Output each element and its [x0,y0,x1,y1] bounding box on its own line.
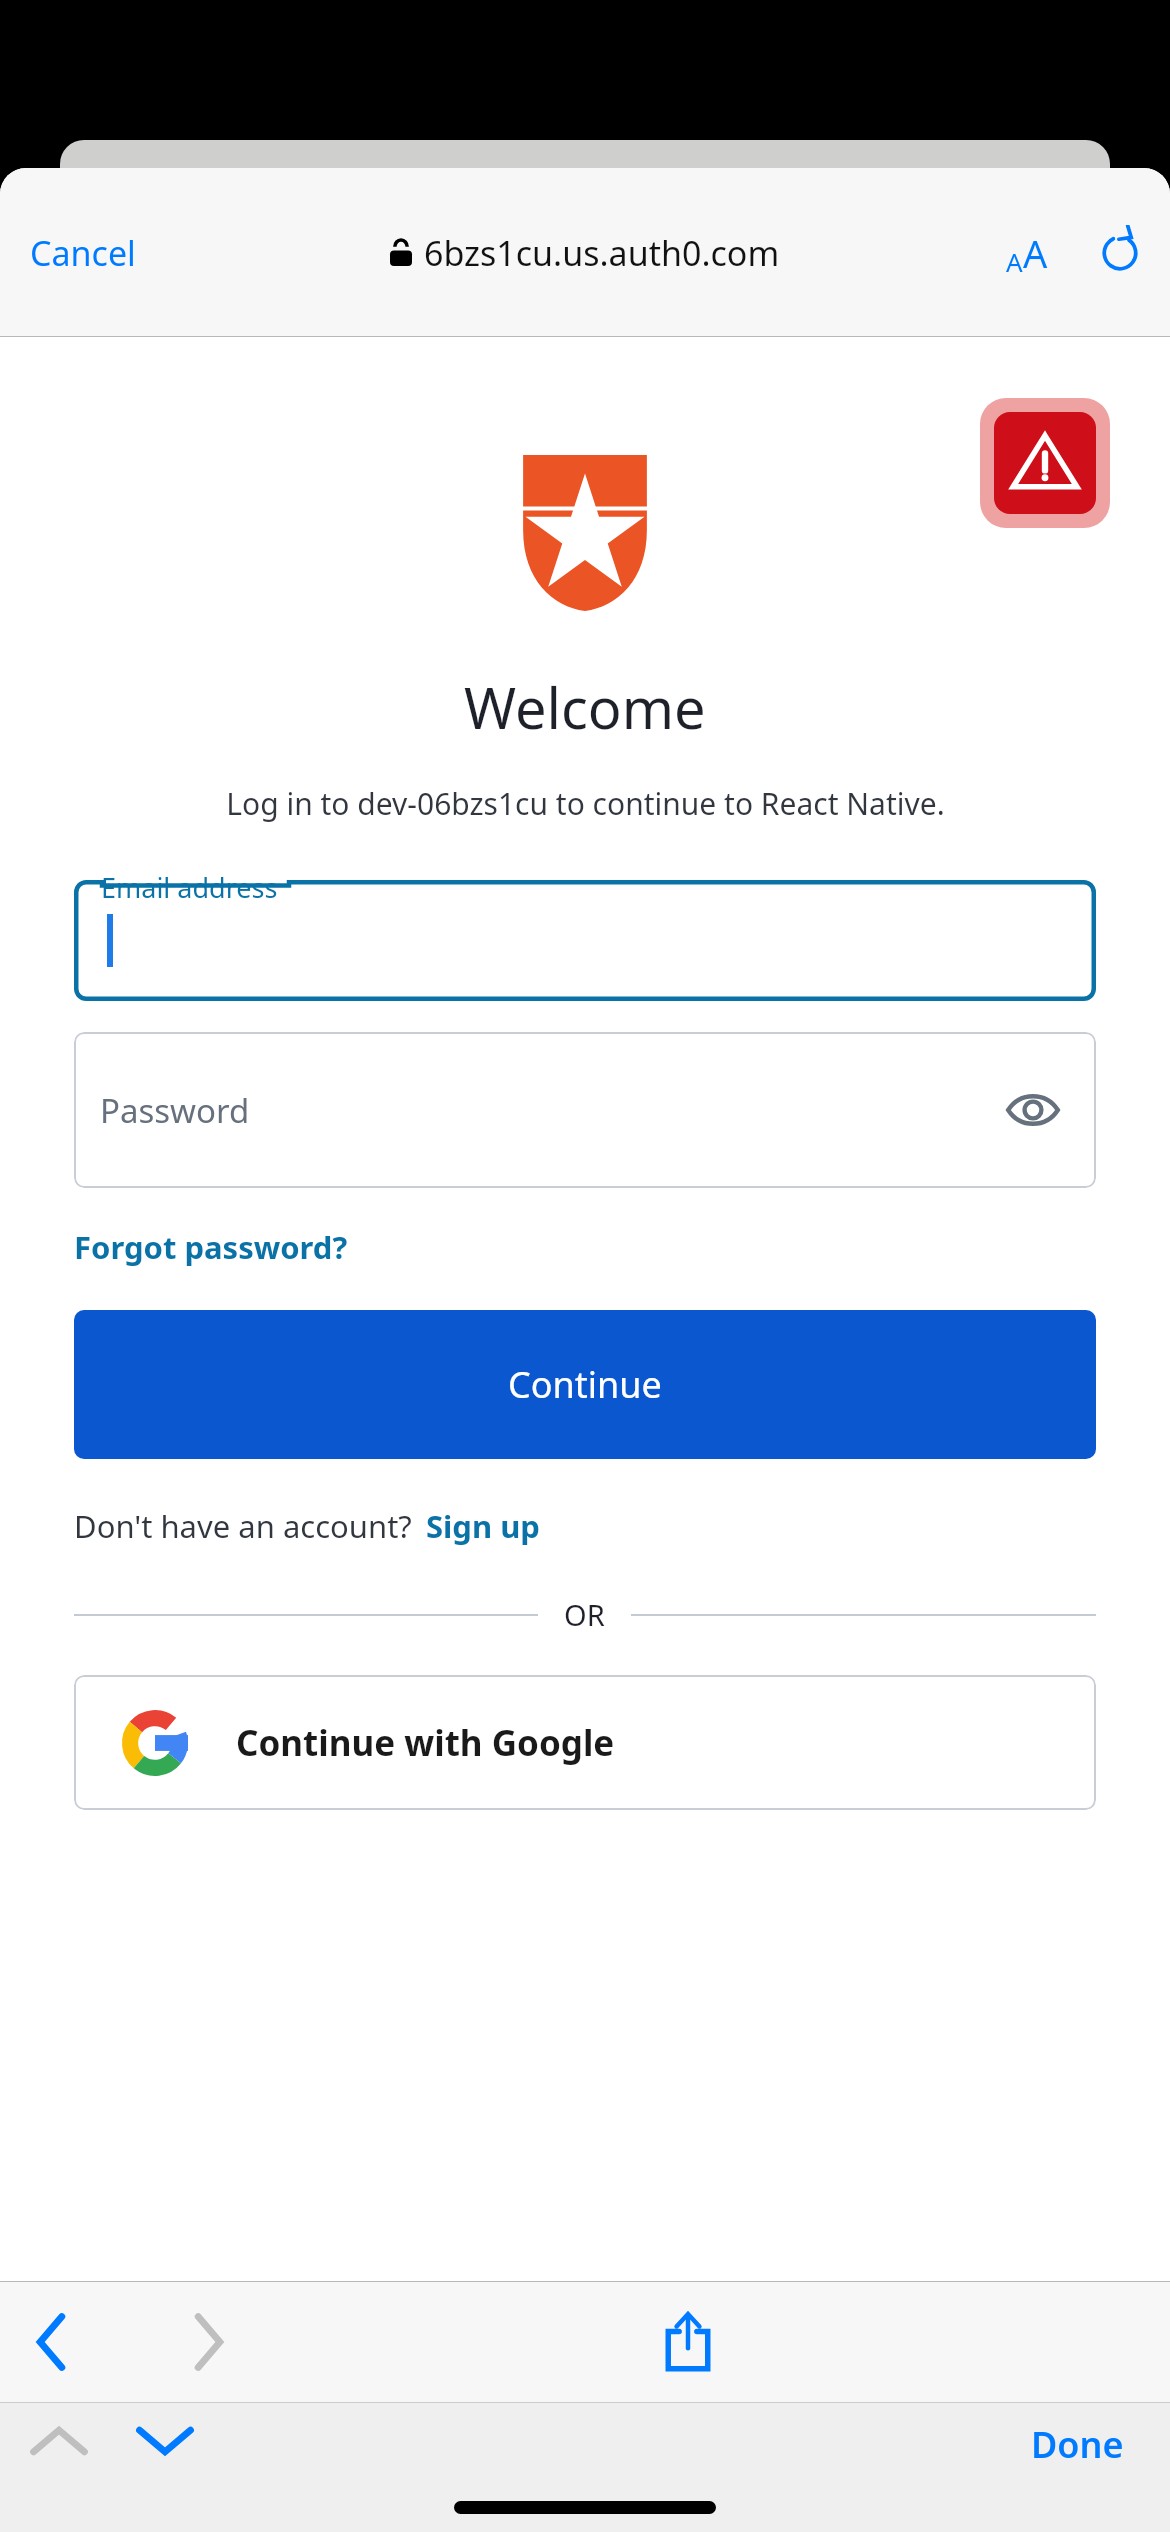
button[interactable]: Show password [1000,1084,1066,1136]
button[interactable]: Email address [74,880,1096,1001]
button[interactable]: Continue [74,1310,1096,1459]
staticText: Password [100,1088,250,1133]
staticText: Continue with Google [236,1719,615,1767]
staticText: Continue [508,1360,662,1409]
button[interactable]: Error [980,398,1110,528]
staticText: A [1006,244,1023,279]
staticText: Forgot password? [74,1226,348,1268]
button[interactable]: Text size [1000,219,1054,287]
button[interactable]: Password [74,1032,1096,1188]
button[interactable]: Continue with Google [74,1675,1096,1810]
staticText: A [1023,227,1048,279]
staticText: Log in to dev-06bzs1cu to continue to Re… [226,783,945,824]
button[interactable]: Forgot password? [74,1222,348,1272]
button[interactable]: Share [654,2303,722,2381]
button[interactable]: Forward [180,2301,238,2383]
button[interactable]: Done [1021,2410,1134,2479]
button[interactable]: Back [22,2301,80,2383]
staticText: Welcome [464,669,706,745]
button[interactable]: Next field [126,2414,204,2468]
staticText: Done [1031,2420,1124,2469]
button[interactable]: Cancel [12,220,154,286]
button[interactable]: Reload [1092,225,1148,281]
button[interactable]: Sign up [426,1501,540,1551]
staticText: 6bzs1cu.us.auth0.com [424,230,780,276]
button[interactable]: Previous field [20,2414,98,2468]
staticText: Don't have an account? [74,1505,412,1547]
staticText: OR [564,1595,605,1634]
staticText: Email address [101,869,278,906]
staticText: Cancel [30,230,136,276]
staticText: Sign up [426,1505,540,1547]
